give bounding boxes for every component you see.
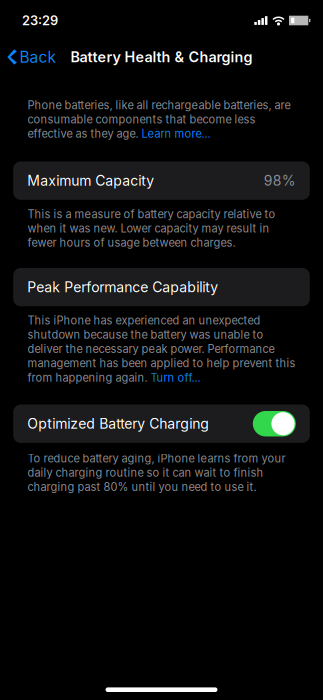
staticText: Peak Performance Capability — [27, 279, 218, 295]
button[interactable]: Back — [0, 43, 60, 71]
staticText: This is a measure of battery capacity re… — [27, 207, 275, 249]
button[interactable]: effective as they age. — [27, 127, 210, 141]
staticText: Maximum Capacity — [27, 172, 154, 189]
button[interactable]: Optimized Battery Charging — [0, 405, 323, 443]
button[interactable]: from happening again. — [27, 370, 200, 385]
staticText: deliver the necessary peak power. Perfor… — [27, 342, 274, 356]
staticText: Optimized Battery Charging — [27, 415, 209, 432]
staticText: 98% — [264, 172, 296, 189]
staticText: This iPhone has experienced an unexpecte… — [27, 314, 260, 327]
staticText: 23:29 — [22, 13, 58, 28]
staticText: Phone batteries, like all rechargeable b… — [27, 98, 290, 112]
staticText: Back — [20, 48, 56, 66]
staticText: Learn more... — [141, 127, 210, 140]
staticText: management has been applied to help prev… — [27, 357, 295, 370]
staticText: from happening again. — [27, 371, 150, 384]
staticText: effective as they age. — [27, 127, 141, 140]
staticText: shutdown because the battery was unable … — [27, 328, 263, 341]
staticText: Battery Health & Charging — [71, 48, 253, 66]
button[interactable]: Peak Performance Capability — [0, 268, 323, 306]
staticText: Turn off... — [150, 371, 200, 384]
staticText: To reduce battery aging, iPhone learns f… — [27, 452, 285, 494]
staticText: consumable components that become less — [27, 113, 255, 126]
